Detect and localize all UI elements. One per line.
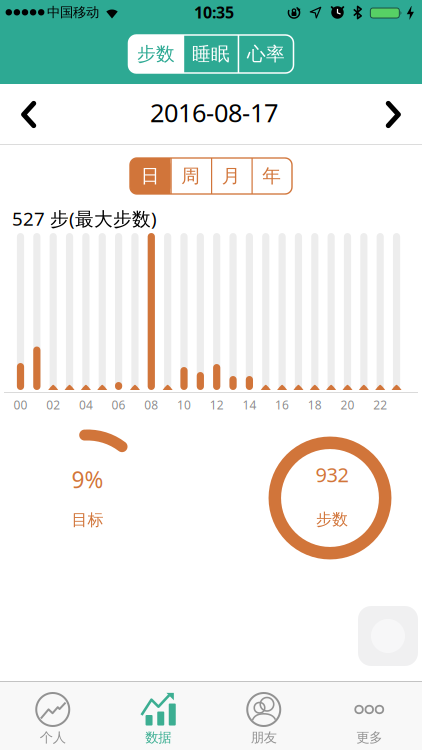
staticText: 12 bbox=[210, 397, 224, 413]
staticText: 932 bbox=[315, 461, 348, 488]
staticText: 目标 bbox=[71, 510, 103, 530]
staticText: 14 bbox=[242, 397, 256, 413]
staticText: 06 bbox=[112, 397, 126, 413]
staticText: 08 bbox=[144, 397, 158, 413]
button[interactable]: 日 bbox=[130, 158, 170, 194]
button[interactable]: Previous day bbox=[0, 92, 48, 137]
staticText: 数据 bbox=[145, 729, 171, 746]
staticText: 16 bbox=[275, 397, 289, 413]
button[interactable]: 心率 bbox=[238, 35, 293, 73]
staticText: 527 步(最大步数) bbox=[12, 206, 157, 231]
staticText: 10:35 bbox=[194, 2, 234, 23]
button[interactable]: 年 bbox=[251, 158, 292, 194]
button[interactable]: 数据 bbox=[105, 681, 211, 750]
staticText: 睡眠 bbox=[192, 42, 230, 65]
staticText: 个人 bbox=[40, 729, 66, 746]
staticText: 2016-08-17 bbox=[150, 96, 278, 129]
button[interactable]: 朋友 bbox=[211, 681, 316, 750]
button[interactable]: 步数 bbox=[128, 35, 183, 73]
staticText: 20 bbox=[340, 397, 354, 413]
staticText: 月 bbox=[222, 164, 241, 187]
staticText: 中国移动 bbox=[47, 4, 99, 20]
staticText: 04 bbox=[79, 397, 93, 413]
staticText: 日 bbox=[141, 164, 160, 187]
button[interactable]: 睡眠 bbox=[183, 35, 238, 73]
button[interactable]: 月 bbox=[211, 158, 251, 194]
button[interactable]: 周 bbox=[170, 158, 211, 194]
staticText: 00 bbox=[13, 397, 27, 413]
button[interactable]: Next day bbox=[374, 92, 422, 137]
staticText: 朋友 bbox=[251, 729, 277, 746]
staticText: 更多 bbox=[356, 729, 382, 746]
staticText: 步数 bbox=[137, 42, 175, 65]
staticText: 10 bbox=[177, 397, 191, 413]
staticText: 18 bbox=[308, 397, 322, 413]
staticText: 步数 bbox=[316, 510, 348, 529]
staticText: 22 bbox=[373, 397, 387, 413]
button[interactable]: 个人 bbox=[0, 681, 105, 750]
staticText: 9% bbox=[71, 464, 103, 494]
staticText: 心率 bbox=[247, 42, 285, 65]
staticText: 02 bbox=[46, 397, 60, 413]
button[interactable]: 更多 bbox=[316, 681, 422, 750]
staticText: 周 bbox=[181, 164, 200, 187]
staticText: 年 bbox=[262, 164, 281, 187]
